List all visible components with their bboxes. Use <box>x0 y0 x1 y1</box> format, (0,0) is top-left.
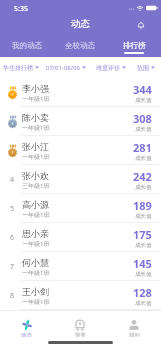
staticText: 281 <box>133 140 152 155</box>
button[interactable]: 张小江 <box>0 136 161 165</box>
staticText: 范围 <box>137 64 149 72</box>
staticText: 一年级1班 <box>22 211 50 219</box>
staticText: 成长值 <box>135 213 152 220</box>
staticText: 344 <box>133 82 152 97</box>
staticText: 王小剑 <box>22 286 49 297</box>
staticText: 动态 <box>71 18 90 30</box>
staticText: 学生排行榜 <box>3 64 33 72</box>
staticText: 一年级1班 <box>22 124 50 132</box>
staticText: 5 <box>10 204 15 214</box>
button[interactable]: 排行榜 <box>107 36 161 57</box>
button[interactable]: 全校动态 <box>53 36 107 57</box>
button[interactable]: 8 <box>0 281 161 310</box>
staticText: 128 <box>133 285 152 300</box>
button[interactable]: 学生排行榜 <box>0 57 41 78</box>
staticText: 175 <box>133 227 152 242</box>
staticText: 成长值 <box>135 271 152 278</box>
staticText: 高小源 <box>22 199 49 210</box>
staticText: 何小慧 <box>22 257 49 268</box>
staticText: 荣誉 <box>75 332 86 337</box>
staticText: 动态 <box>21 332 32 337</box>
staticText: 成长值 <box>135 300 152 307</box>
staticText: 5:35 <box>14 4 28 14</box>
staticText: 一年级1班 <box>22 240 50 248</box>
staticText: 陈小卖 <box>22 112 49 123</box>
staticText: 成长值 <box>135 184 152 191</box>
button[interactable]: 4 <box>0 165 161 194</box>
button[interactable]: 我的 <box>107 319 161 337</box>
staticText: 成长值 <box>135 126 152 133</box>
staticText: 三年级1班 <box>22 182 50 190</box>
staticText: 成长值 <box>135 155 152 162</box>
staticText: 145 <box>133 256 152 271</box>
button[interactable]: 6 <box>0 223 161 252</box>
staticText: 一年级1班 <box>22 269 50 277</box>
staticText: 189 <box>133 198 152 213</box>
staticText: 4 <box>10 175 15 185</box>
button[interactable]: 李小强 <box>0 78 161 107</box>
staticText: 07/01-08/06 <box>46 64 80 72</box>
button[interactable]: 范围 <box>130 57 161 78</box>
staticText: 6 <box>10 233 15 243</box>
staticText: 维度评价 <box>96 64 120 72</box>
staticText: 张小江 <box>22 141 49 152</box>
button[interactable]: 5 <box>0 194 161 223</box>
staticText: 全校动态 <box>65 41 95 50</box>
staticText: 7 <box>10 262 15 272</box>
staticText: 我的动态 <box>12 41 42 50</box>
staticText: 思小亲 <box>22 228 49 239</box>
button[interactable]: 我的动态 <box>0 36 53 57</box>
button[interactable]: 维度评价 <box>91 57 130 78</box>
button[interactable]: 陈小卖 <box>0 107 161 136</box>
button[interactable]: 荣誉 <box>53 319 107 337</box>
button[interactable]: 7 <box>0 252 161 281</box>
staticText: 一年级1班 <box>22 153 50 161</box>
staticText: 242 <box>133 169 152 184</box>
staticText: 308 <box>133 111 152 126</box>
button[interactable]: 动态 <box>0 319 53 337</box>
staticText: 一年级1班 <box>22 298 50 306</box>
button[interactable]: 07/01-08/06 <box>41 57 91 78</box>
staticText: 成长值 <box>135 242 152 249</box>
staticText: 成长值 <box>135 97 152 104</box>
staticText: 排行榜 <box>123 41 146 50</box>
button[interactable]: Notifications <box>132 17 150 35</box>
staticText: 张小欢 <box>22 170 49 181</box>
staticText: 李小强 <box>22 83 49 94</box>
staticText: 我的 <box>129 332 140 337</box>
staticText: 8 <box>10 291 15 301</box>
staticText: 一年级1班 <box>22 95 50 103</box>
